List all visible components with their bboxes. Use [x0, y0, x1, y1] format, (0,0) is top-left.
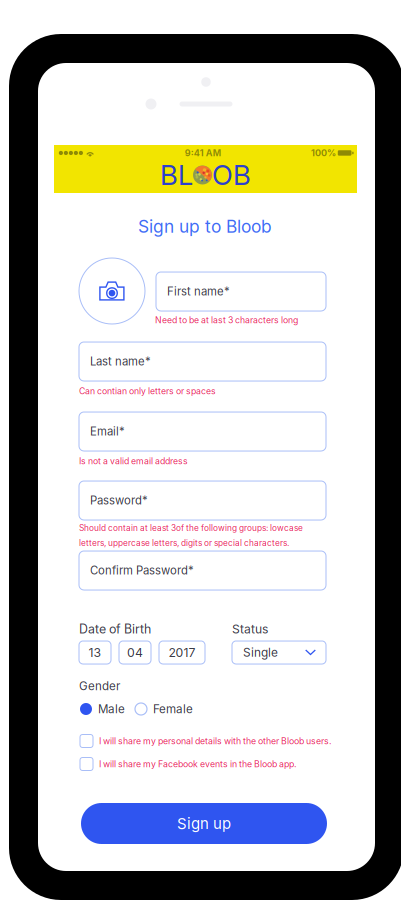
- staticText: I will share my Facebook events in the B…: [99, 759, 297, 769]
- button[interactable]: 2017: [159, 641, 205, 664]
- button[interactable]: 13: [79, 641, 111, 664]
- button[interactable]: Single: [232, 641, 326, 664]
- staticText: Date of Birth: [79, 621, 151, 636]
- button[interactable]: Add photo: [79, 258, 145, 324]
- staticText: Sign up: [177, 814, 231, 833]
- staticText: OB: [212, 158, 251, 191]
- staticText: letters, uppercase letters, digits or sp…: [79, 538, 289, 548]
- button[interactable]: Email*: [79, 412, 326, 451]
- staticText: 04: [127, 645, 143, 660]
- staticText: Single: [243, 645, 278, 660]
- staticText: 13: [88, 645, 101, 660]
- button[interactable]: Last name*: [79, 342, 326, 381]
- staticText: Email*: [90, 425, 125, 438]
- staticText: 2017: [168, 645, 195, 660]
- button[interactable]: I will share my Facebook events in the B…: [80, 757, 336, 770]
- button[interactable]: Confirm Password*: [79, 551, 326, 590]
- staticText: Gender: [79, 679, 120, 693]
- staticText: Password*: [90, 494, 148, 507]
- staticText: Should contain at least 3of the followin…: [79, 523, 303, 533]
- staticText: Last name*: [90, 355, 151, 368]
- button[interactable]: Male: [80, 702, 140, 716]
- staticText: Male: [98, 702, 125, 716]
- button[interactable]: Sign up: [81, 803, 327, 844]
- button[interactable]: 04: [119, 641, 151, 664]
- staticText: Sign up to Bloob: [138, 216, 272, 237]
- staticText: Is not a valid email address: [79, 456, 188, 466]
- button[interactable]: First name*: [156, 272, 326, 311]
- staticText: 9:41 AM: [185, 147, 221, 158]
- staticText: Confirm Password*: [90, 564, 194, 577]
- staticText: Status: [232, 622, 268, 636]
- button[interactable]: Password*: [79, 481, 326, 520]
- staticText: I will share my personal details with th…: [99, 736, 332, 746]
- staticText: First name*: [167, 285, 230, 298]
- staticText: 100%: [311, 147, 336, 158]
- staticText: Need to be at last 3 characters long: [155, 315, 298, 325]
- staticText: BL: [160, 158, 193, 191]
- button[interactable]: Female: [135, 702, 210, 716]
- staticText: Can contian only letters or spaces: [79, 386, 216, 396]
- button[interactable]: I will share my personal details with th…: [80, 734, 336, 747]
- staticText: Female: [153, 702, 193, 716]
